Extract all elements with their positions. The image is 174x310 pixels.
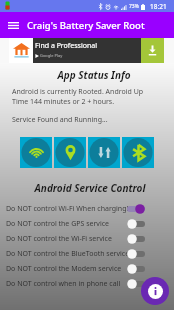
staticText: Do NOT control the Modem service xyxy=(6,264,122,274)
button[interactable]: Location xyxy=(54,137,86,168)
button[interactable]: Wi-Fi xyxy=(20,137,52,168)
button[interactable]: Do NOT control the BlueTooth service xyxy=(0,246,174,261)
staticText: 18:21 xyxy=(150,2,167,11)
staticText: Do NOT control Wi-Fi When charging! xyxy=(6,204,129,214)
staticText: Do NOT control the Wi-Fi service xyxy=(6,234,112,244)
staticText: Do NOT control the BlueTooth service xyxy=(6,249,130,259)
staticText: Find a Professional xyxy=(35,41,98,51)
staticText: Do NOT control when in phone call xyxy=(6,279,121,289)
button[interactable]: Open navigation menu xyxy=(0,12,27,38)
button[interactable]: Mobile data xyxy=(88,137,120,168)
staticText: Google Play xyxy=(40,53,63,58)
staticText: Android Service Control xyxy=(6,181,174,195)
staticText: Craig's Battery Saver Root xyxy=(27,19,145,32)
staticText: Service Found and Running... xyxy=(12,115,108,125)
button[interactable]: Do NOT control the GPS service xyxy=(0,216,174,231)
staticText: 73% xyxy=(129,3,139,10)
button[interactable]: Do NOT control Wi-Fi When charging! xyxy=(0,201,174,216)
button[interactable]: Info xyxy=(141,277,169,305)
staticText: Android is currently Rooted. Android Up … xyxy=(12,87,144,107)
staticText: Do NOT control the GPS service xyxy=(6,219,109,229)
staticText: App Status Info xyxy=(14,68,174,82)
button[interactable]: Bluetooth xyxy=(122,137,154,168)
button[interactable]: Do NOT control when in phone call xyxy=(0,276,174,291)
button[interactable]: Find a Professional xyxy=(9,38,164,63)
button[interactable]: Do NOT control the Wi-Fi service xyxy=(0,231,174,246)
button[interactable]: Do NOT control the Modem service xyxy=(0,261,174,276)
